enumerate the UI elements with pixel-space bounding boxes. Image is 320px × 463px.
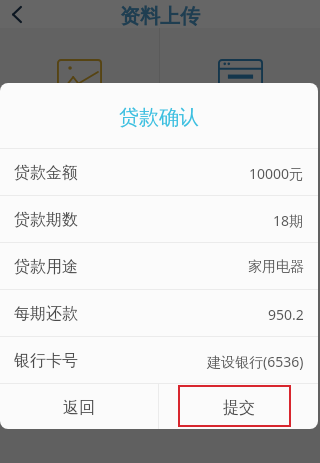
button[interactable]: 每期还款 [0,290,318,336]
staticText: 每期还款 [14,304,78,324]
button[interactable]: 银行卡号 [0,337,318,383]
staticText: 返回 [63,398,95,418]
staticText: 18期 [273,211,304,230]
button[interactable]: 提交 [159,384,318,429]
button[interactable]: Back [0,0,32,28]
staticText: 10000元 [249,164,304,183]
staticText: 建设银行(6536) [207,352,304,371]
staticText: 贷款用途 [14,257,78,277]
staticText: 贷款金额 [14,163,78,183]
button[interactable]: 贷款期数 [0,196,318,242]
staticText: 家用电器 [248,258,304,276]
staticText: 950.2 [268,305,304,324]
button[interactable]: 贷款用途 [0,243,318,289]
staticText: 提交 [223,398,255,418]
button[interactable]: Upload photo [0,28,159,148]
button[interactable]: Upload document [160,28,320,148]
staticText: 银行卡号 [14,351,78,371]
staticText: 贷款确认 [119,105,199,130]
button[interactable]: 返回 [0,384,158,429]
staticText: 资料上传 [120,4,200,29]
button[interactable]: 贷款金额 [0,149,318,195]
staticText: 贷款期数 [14,210,78,230]
